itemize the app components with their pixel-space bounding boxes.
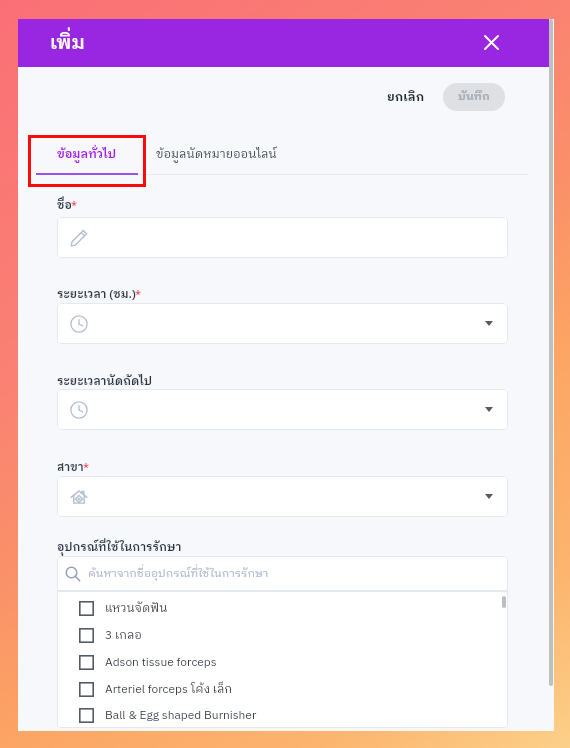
staticText: ระยะเวลานัดถัดไป xyxy=(57,372,153,391)
button[interactable] xyxy=(57,476,508,517)
staticText: ค้นหาจากชื่ออุปกรณ์ที่ใช้ในการรักษา xyxy=(88,565,269,583)
button[interactable]: 3 เกลอ xyxy=(57,622,508,649)
button[interactable]: ข้อมูลทั่วไป xyxy=(29,136,145,174)
staticText: 3 เกลอ xyxy=(105,626,142,646)
staticText: Arteriel forceps โค้ง เล็ก xyxy=(105,680,233,700)
button[interactable]: Adson tissue forceps xyxy=(57,649,508,676)
staticText: * xyxy=(83,459,90,474)
staticText: แหวนจัดฟัน xyxy=(105,599,168,619)
staticText: ชื่อ xyxy=(57,196,72,215)
staticText: บันทึก xyxy=(458,88,490,106)
staticText: ยกเลิก xyxy=(387,87,425,107)
button[interactable]: Close xyxy=(477,28,505,56)
button[interactable]: Arteriel forceps โค้ง เล็ก xyxy=(57,676,508,703)
button[interactable]: ยกเลิก xyxy=(379,83,433,111)
staticText: สาขา xyxy=(57,458,84,477)
staticText: * xyxy=(135,286,142,301)
staticText: * xyxy=(71,197,78,212)
button[interactable] xyxy=(57,303,508,344)
staticText: อุปกรณ์ที่ใช้ในการรักษา xyxy=(57,538,182,557)
button[interactable] xyxy=(57,217,508,258)
button[interactable]: แหวนจัดฟัน xyxy=(57,595,508,622)
staticText: ข้อมูลทั่วไป xyxy=(57,145,117,165)
staticText: เพิ่ม xyxy=(50,27,86,60)
button[interactable]: ค้นหาจากชื่ออุปกรณ์ที่ใช้ในการรักษา xyxy=(57,556,508,591)
staticText: Ball & Egg shaped Burnisher xyxy=(105,706,257,726)
button[interactable]: บันทึก xyxy=(443,83,505,111)
staticText: Adson tissue forceps xyxy=(105,653,217,673)
staticText: ข้อมูลนัดหมายออนไลน์ xyxy=(156,145,277,165)
staticText: ระยะเวลา (ชม.) xyxy=(57,285,136,304)
button[interactable] xyxy=(57,389,508,430)
button[interactable]: ข้อมูลนัดหมายออนไลน์ xyxy=(145,136,305,174)
button[interactable]: Ball & Egg shaped Burnisher xyxy=(57,703,508,728)
